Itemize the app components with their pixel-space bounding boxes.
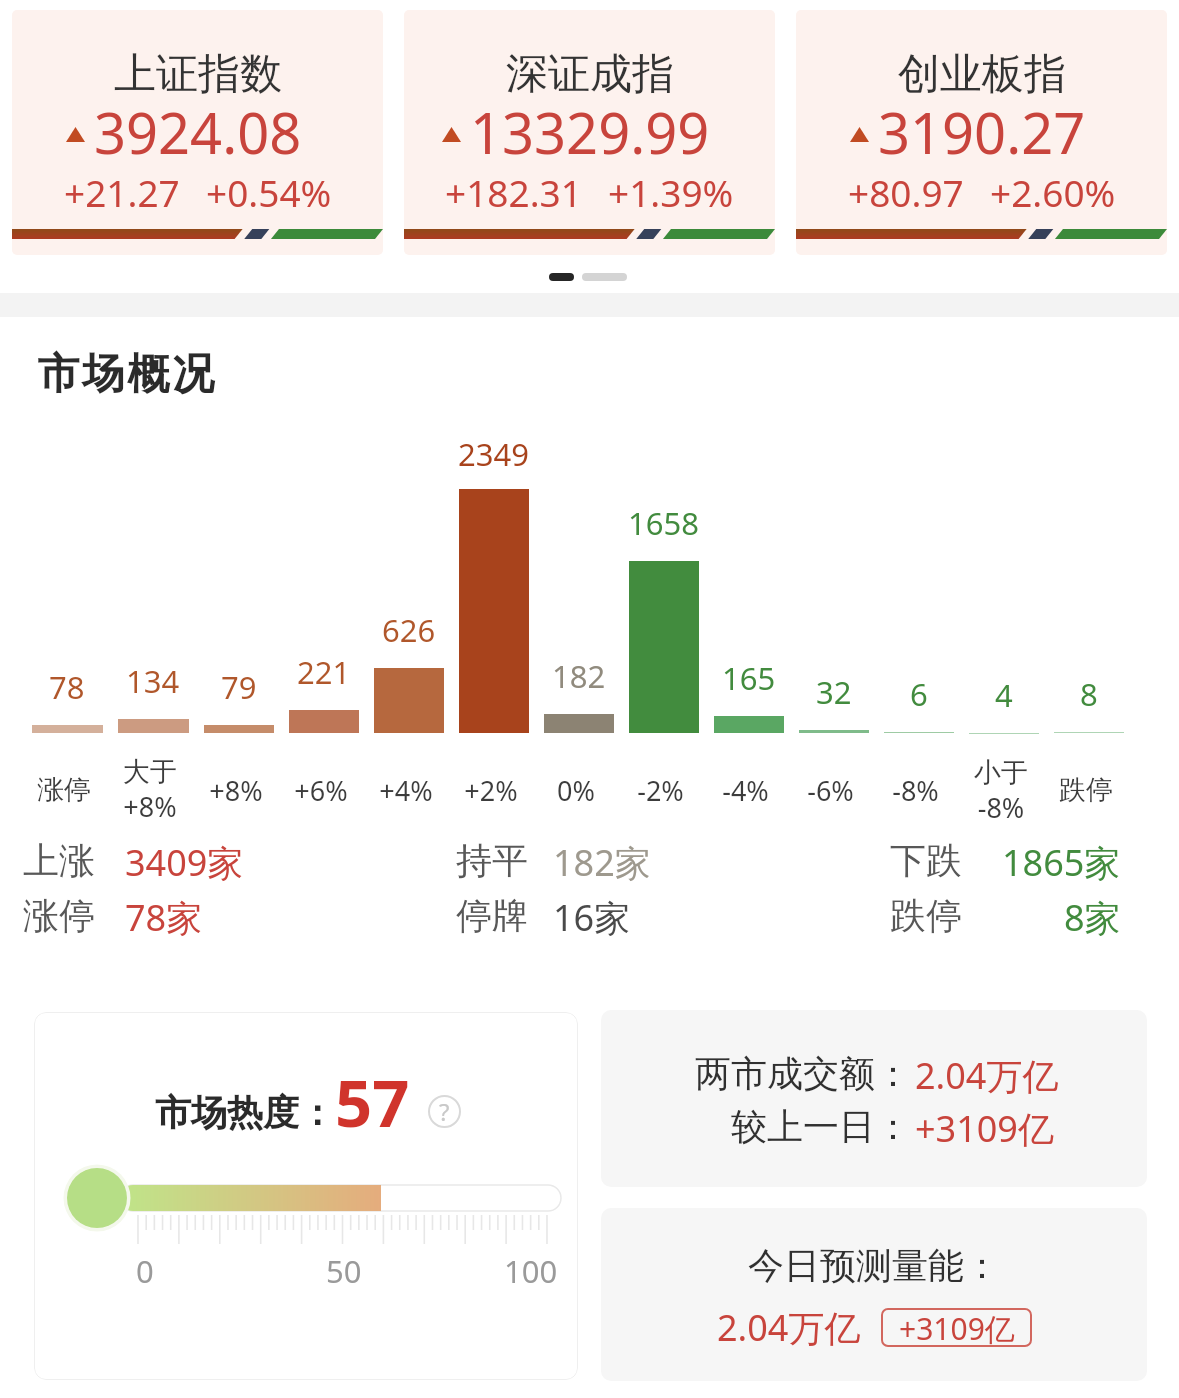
staticText: 下跌 bbox=[890, 838, 962, 883]
staticText: +2.60% bbox=[990, 167, 1116, 217]
staticText: 上证指数 bbox=[114, 48, 282, 101]
staticText: 626 bbox=[382, 609, 436, 651]
button[interactable]: 创业板指 bbox=[796, 10, 1167, 255]
button[interactable]: 深证成指 bbox=[404, 10, 775, 255]
staticText: +8% bbox=[209, 772, 263, 809]
staticText: 市场热度： bbox=[155, 1090, 335, 1135]
staticText: 182家 bbox=[553, 838, 651, 887]
staticText: 8家 bbox=[1064, 893, 1121, 942]
staticText: 79 bbox=[221, 666, 257, 708]
staticText: -6% bbox=[807, 772, 854, 809]
staticText: 3409家 bbox=[125, 838, 244, 887]
staticText: 6 bbox=[910, 673, 928, 715]
staticText: 涨停 bbox=[23, 893, 95, 938]
staticText: 32 bbox=[816, 671, 852, 713]
button[interactable]: 上证指数 bbox=[12, 10, 383, 255]
button[interactable]: 市场热度： bbox=[34, 1012, 578, 1380]
button[interactable]: 说明 bbox=[428, 1095, 461, 1128]
staticText: 上涨 bbox=[23, 838, 95, 883]
staticText: +3109亿 bbox=[915, 1104, 1054, 1153]
staticText: +3109亿 bbox=[899, 1308, 1015, 1347]
staticText: 今日预测量能： bbox=[748, 1243, 1000, 1288]
button[interactable]: 两市成交额： bbox=[601, 1010, 1147, 1187]
staticText: 1865家 bbox=[1002, 838, 1121, 887]
staticText: 50 bbox=[326, 1250, 362, 1292]
staticText: 78家 bbox=[125, 893, 203, 942]
staticText: +1.39% bbox=[608, 167, 734, 217]
staticText: 165 bbox=[722, 657, 776, 699]
staticText: ? bbox=[439, 1095, 450, 1128]
staticText: +2% bbox=[464, 772, 518, 809]
staticText: 较上一日： bbox=[731, 1104, 911, 1149]
button[interactable]: 今日预测量能： bbox=[601, 1208, 1147, 1381]
staticText: 2349 bbox=[458, 433, 529, 472]
staticText: 3924.08 bbox=[94, 94, 302, 170]
staticText: 57 bbox=[335, 1058, 410, 1147]
staticText: 2.04万亿 bbox=[717, 1303, 861, 1352]
staticText: 1658 bbox=[628, 502, 699, 544]
button[interactable] bbox=[549, 273, 574, 281]
staticText: 跌停 bbox=[1059, 773, 1113, 807]
staticText: 134 bbox=[126, 660, 180, 702]
staticText: 涨停 bbox=[37, 773, 91, 807]
staticText: 4 bbox=[995, 674, 1013, 716]
staticText: 深证成指 bbox=[506, 48, 674, 101]
staticText: -4% bbox=[722, 772, 769, 809]
staticText: +80.97 bbox=[848, 167, 964, 217]
staticText: 跌停 bbox=[890, 893, 962, 938]
staticText: 182 bbox=[552, 655, 606, 697]
staticText: 大于 +8% bbox=[123, 755, 177, 825]
staticText: 市场概况 bbox=[36, 348, 216, 401]
staticText: 持平 bbox=[456, 838, 528, 883]
staticText: 3190.27 bbox=[878, 94, 1086, 170]
staticText: 13329.99 bbox=[470, 94, 710, 170]
staticText: +182.31 bbox=[445, 167, 582, 217]
staticText: 78 bbox=[49, 666, 85, 708]
staticText: 停牌 bbox=[456, 893, 528, 938]
staticText: 0% bbox=[557, 772, 595, 809]
staticText: 100 bbox=[504, 1250, 558, 1292]
staticText: +0.54% bbox=[206, 167, 332, 217]
staticText: -8% bbox=[892, 772, 939, 809]
staticText: 221 bbox=[297, 651, 351, 693]
staticText: +21.27 bbox=[64, 167, 180, 217]
staticText: 16家 bbox=[553, 893, 631, 942]
staticText: +4% bbox=[379, 772, 433, 809]
staticText: 创业板指 bbox=[898, 48, 1066, 101]
button[interactable] bbox=[582, 273, 627, 281]
staticText: 8 bbox=[1080, 673, 1098, 715]
staticText: 两市成交额： bbox=[695, 1051, 911, 1096]
staticText: 2.04万亿 bbox=[915, 1051, 1059, 1100]
staticText: 小于 -8% bbox=[974, 756, 1028, 826]
staticText: +6% bbox=[294, 772, 348, 809]
staticText: -2% bbox=[637, 772, 684, 809]
staticText: 0 bbox=[136, 1250, 154, 1292]
